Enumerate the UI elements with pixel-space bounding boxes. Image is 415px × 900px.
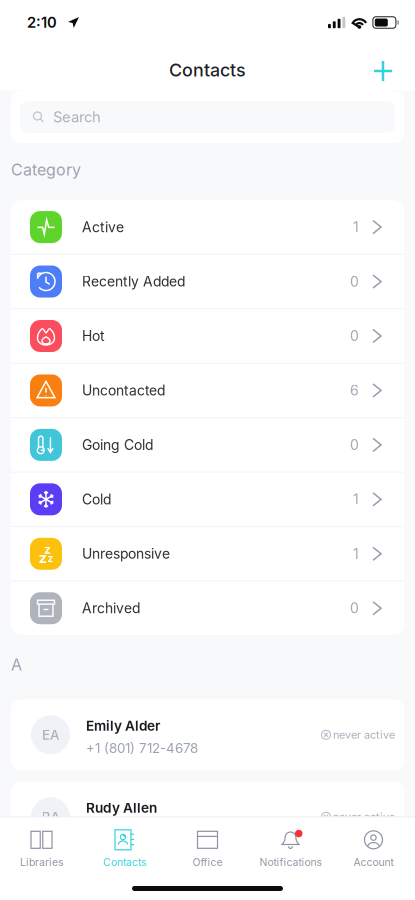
staticText: Recently Added (82, 273, 185, 290)
staticText: Emily Alder (86, 717, 160, 734)
button[interactable]: Active (11, 200, 404, 254)
staticText: never active (333, 810, 395, 823)
button[interactable]: Office (166, 817, 249, 868)
staticText: 1 (353, 491, 359, 508)
staticText: 0 (350, 273, 359, 290)
button[interactable]: Add contact (363, 47, 403, 93)
staticText: Rudy Allen (86, 799, 157, 816)
staticText: 1 (353, 219, 359, 235)
staticText: Cold (82, 491, 111, 508)
button[interactable]: Contacts (83, 817, 166, 868)
staticText: 0 (350, 327, 359, 344)
staticText: EA (42, 727, 59, 743)
button[interactable]: Going Cold (11, 418, 404, 472)
button[interactable]: Notifications (249, 817, 332, 868)
staticText: 1 (353, 545, 359, 562)
staticText: Search (53, 108, 101, 126)
button[interactable]: Recently Added (11, 255, 404, 308)
button[interactable]: z (11, 527, 404, 581)
button[interactable]: Hot (11, 309, 404, 363)
button[interactable]: Search (20, 101, 395, 133)
button[interactable]: RA (11, 781, 404, 852)
staticText: never active (333, 728, 395, 741)
staticText: +1 (801) 712-4678 (86, 740, 198, 756)
button[interactable]: Uncontacted (11, 364, 404, 417)
staticText: Notifications (259, 856, 321, 869)
staticText: Contacts (169, 59, 246, 81)
staticText: z (44, 542, 51, 556)
button[interactable]: Cold (11, 473, 404, 526)
staticText: Unresponsive (82, 545, 170, 562)
staticText: Active (82, 219, 124, 235)
staticText: Contacts (103, 856, 146, 869)
staticText: Libraries (20, 856, 63, 869)
staticText: 0 (350, 436, 359, 453)
staticText: Account (353, 856, 393, 869)
staticText: Category (11, 160, 81, 179)
staticText: 0 (350, 600, 359, 617)
staticText: Uncontacted (82, 382, 165, 399)
staticText: Hot (82, 328, 105, 344)
staticText: z (38, 549, 46, 567)
staticText: Archived (82, 600, 140, 617)
staticText: 6 (350, 382, 359, 399)
staticText: z (47, 552, 53, 564)
staticText: Office (192, 856, 222, 869)
button[interactable]: Archived (11, 581, 404, 635)
staticText: RA (41, 809, 59, 825)
staticText: Going Cold (82, 436, 153, 453)
button[interactable]: Libraries (0, 817, 83, 868)
staticText: A (11, 655, 22, 674)
staticText: 2:10 (27, 14, 57, 31)
button[interactable]: EA (11, 699, 404, 770)
button[interactable]: Account (332, 817, 415, 868)
staticText: +1 (801) 712-4678 (86, 822, 198, 838)
